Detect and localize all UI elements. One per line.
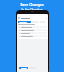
button[interactable]: Menu xyxy=(17,16,48,20)
staticText: In Any Direction xyxy=(21,8,43,12)
button[interactable] xyxy=(18,32,47,34)
button[interactable] xyxy=(18,26,47,28)
button[interactable] xyxy=(19,67,28,69)
button[interactable] xyxy=(18,21,31,23)
button[interactable] xyxy=(18,29,47,31)
button[interactable] xyxy=(18,35,47,37)
staticText: Save Changes xyxy=(20,2,44,7)
